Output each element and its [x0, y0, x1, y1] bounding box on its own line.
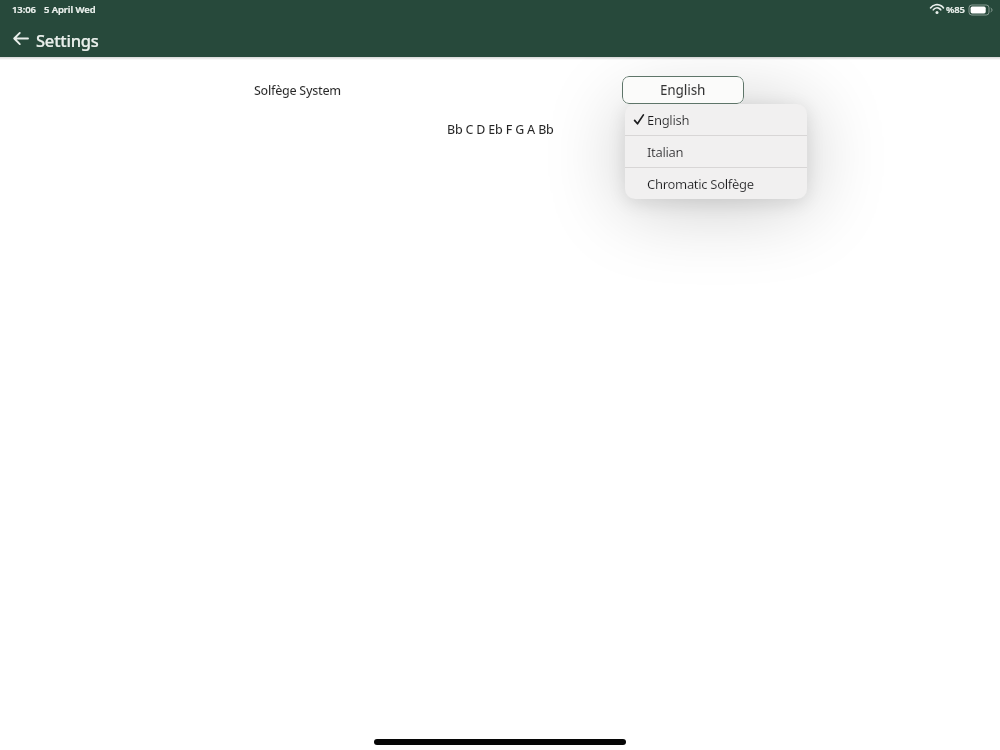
staticText: %85 [946, 3, 965, 16]
button[interactable]: Italian [625, 136, 807, 167]
button[interactable]: English [625, 104, 807, 135]
staticText: Settings [36, 29, 99, 51]
staticText: Italian [647, 143, 684, 161]
staticText: Solfège System [254, 82, 341, 99]
staticText: Chromatic Solfège [647, 175, 754, 193]
staticText: English [647, 111, 690, 129]
staticText: 13:06 [12, 3, 36, 16]
button[interactable]: English [622, 76, 744, 104]
button[interactable]: Chromatic Solfège [625, 168, 807, 199]
staticText: 5 April Wed [44, 3, 96, 16]
staticText: English [660, 81, 706, 99]
button[interactable] [13, 31, 28, 46]
staticText: Bb C D Eb F G A Bb [447, 121, 554, 138]
